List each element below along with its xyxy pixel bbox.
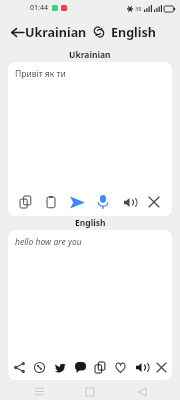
button[interactable]: Recents [26, 383, 52, 400]
button[interactable]: Привіт як ти [8, 62, 172, 188]
button[interactable]: English [109, 24, 158, 41]
button[interactable]: Paste [41, 192, 61, 212]
button[interactable]: Back [6, 21, 28, 43]
staticText: English [111, 24, 156, 41]
button[interactable]: WhatsApp [29, 357, 49, 377]
staticText: 01:44 [30, 3, 48, 13]
staticText: Ukrainian [25, 24, 87, 41]
button[interactable]: hello how are you [8, 230, 172, 354]
button[interactable]: Copy [16, 192, 36, 212]
button[interactable]: Message [70, 357, 90, 377]
button[interactable]: Listen [119, 192, 139, 212]
button[interactable]: Share [9, 357, 29, 377]
button[interactable]: Back [129, 383, 155, 400]
button[interactable]: Clear [151, 357, 171, 377]
button[interactable]: Twitter [50, 357, 70, 377]
staticText: Привіт як ти [15, 68, 66, 80]
button[interactable]: Favourite [110, 357, 130, 377]
button[interactable]: Listen [131, 357, 151, 377]
button[interactable]: Home [77, 383, 103, 400]
button[interactable]: Copy [90, 357, 110, 377]
staticText: Ukrainian [69, 49, 111, 61]
button[interactable]: Speak [93, 192, 113, 212]
staticText: 38 [135, 5, 142, 12]
staticText: hello how are you [15, 236, 82, 248]
button[interactable]: Swap languages [89, 22, 109, 42]
button[interactable]: Translate [67, 192, 87, 212]
staticText: English [75, 217, 106, 229]
button[interactable]: Ukrainian [23, 24, 89, 41]
button[interactable]: Clear [144, 192, 164, 212]
